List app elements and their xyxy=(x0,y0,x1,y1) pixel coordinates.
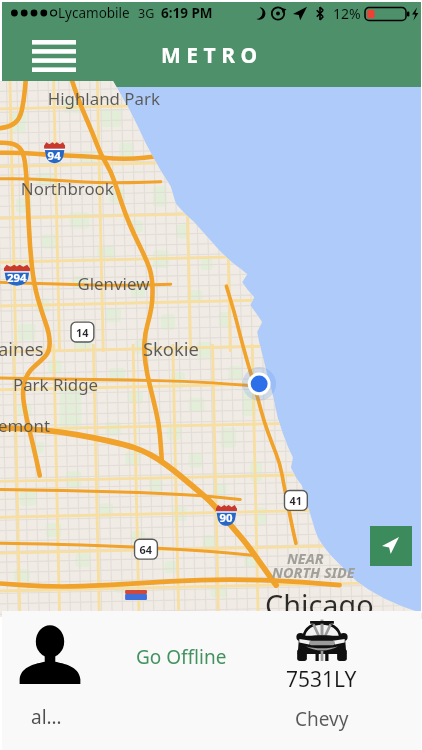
staticText: 6:19 PM xyxy=(161,4,213,22)
button[interactable]: Open navigation menu xyxy=(24,30,84,82)
staticText: 12% xyxy=(333,4,361,23)
staticText: 7531LY xyxy=(286,665,357,694)
button[interactable]: My location xyxy=(370,526,412,566)
staticText: Go Offline xyxy=(136,644,227,670)
staticText: METRO xyxy=(161,41,263,70)
button[interactable]: Go Offline xyxy=(120,611,242,750)
staticText: Lycamobile xyxy=(58,4,130,22)
button[interactable]: 7531LY xyxy=(260,611,382,750)
staticText: al… xyxy=(31,704,62,730)
staticText: Chevy xyxy=(295,706,349,732)
button[interactable]: al… xyxy=(2,611,112,750)
staticText: 3G xyxy=(138,5,155,22)
